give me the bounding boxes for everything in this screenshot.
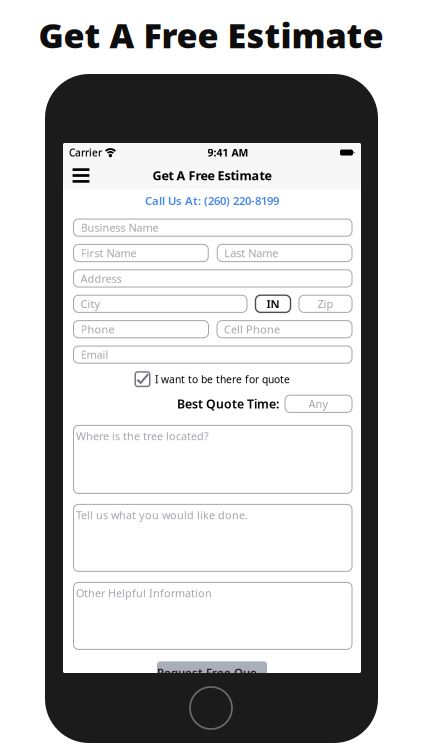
staticText: Best Quote Time: <box>177 396 279 412</box>
staticText: Other Helpful Information <box>76 586 212 600</box>
button[interactable]: Call Us At: (260) 220-8199 <box>63 189 361 212</box>
staticText: Email <box>80 347 108 362</box>
staticText: Get A Free Estimate <box>152 167 271 184</box>
button[interactable]: Menu <box>63 163 99 187</box>
staticText: Any <box>308 396 328 411</box>
staticText: Tell us what you would like done. <box>76 508 248 522</box>
staticText: 9:41 AM <box>207 146 248 159</box>
staticText: Carrier <box>69 146 102 159</box>
staticText: Last Name <box>224 246 278 260</box>
staticText: Get A Free Estimate <box>38 12 383 58</box>
button[interactable]: I want to be there for quote <box>63 371 361 387</box>
button[interactable]: Request Free Quote <box>157 661 267 683</box>
staticText: I want to be there for quote <box>155 372 290 386</box>
staticText: First Name <box>80 246 136 260</box>
staticText: Request Free Quote <box>157 665 267 680</box>
staticText: Business Name <box>80 220 158 235</box>
staticText: Address <box>80 271 121 286</box>
staticText: Phone <box>80 322 114 336</box>
staticText: Call Us At: (260) 220-8199 <box>145 193 279 208</box>
staticText: Where is the tree located? <box>76 429 209 443</box>
staticText: Zip <box>317 296 333 311</box>
staticText: IN <box>266 296 279 311</box>
staticText: Cell Phone <box>224 322 280 336</box>
staticText: City <box>80 296 100 311</box>
